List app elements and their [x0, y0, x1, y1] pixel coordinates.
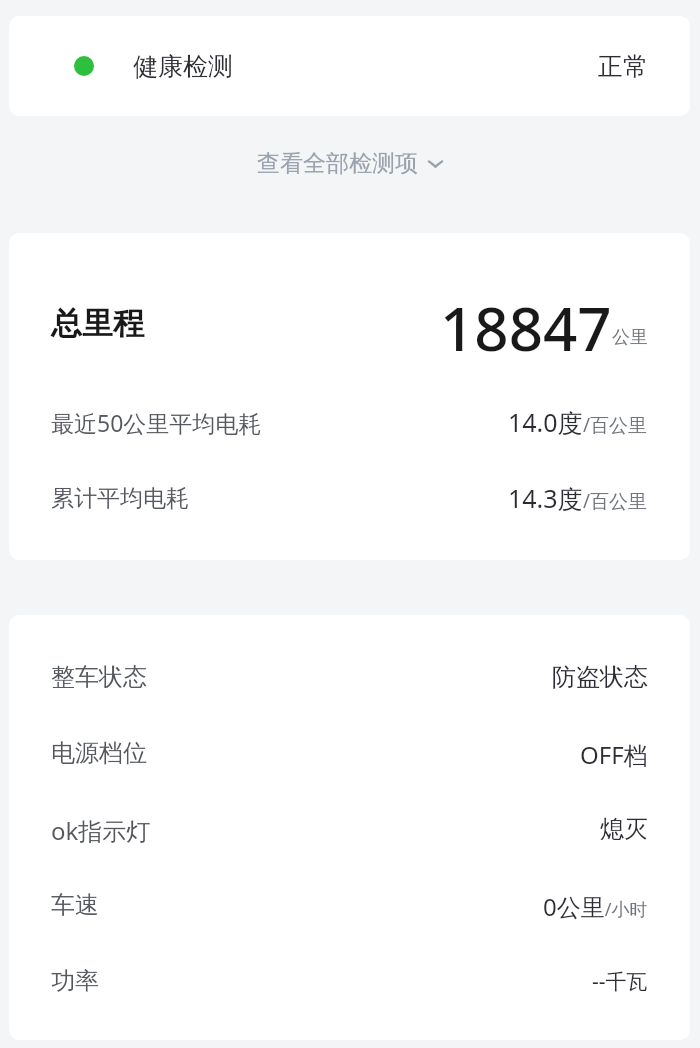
staticText: 正常 — [598, 51, 648, 82]
staticText: /百公里 — [583, 412, 648, 438]
staticText: 整车状态 — [51, 662, 147, 692]
other: Expand all check items — [428, 156, 443, 171]
staticText: ok指示灯 — [51, 814, 151, 844]
staticText: 最近50公里平均电耗 — [51, 407, 262, 438]
staticText: 14.3度 — [508, 481, 583, 515]
staticText: --千瓦 — [592, 967, 648, 996]
staticText: 功率 — [51, 966, 99, 996]
staticText: 防盗状态 — [552, 662, 648, 692]
staticText: 18847 — [440, 287, 612, 359]
staticText: 健康检测 — [133, 51, 233, 82]
staticText: OFF档 — [580, 738, 648, 768]
staticText: /百公里 — [583, 488, 648, 514]
staticText: 查看全部检测项 — [257, 149, 418, 178]
staticText: 公里 — [612, 326, 648, 349]
staticText: 14.0度 — [508, 405, 583, 439]
staticText: 电源档位 — [51, 738, 147, 768]
button[interactable]: 查看全部检测项 — [0, 140, 700, 186]
staticText: 0公里/小时 — [543, 890, 648, 920]
staticText: 累计平均电耗 — [51, 484, 189, 513]
staticText: 车速 — [51, 890, 99, 920]
button[interactable]: 健康检测 — [9, 16, 690, 116]
staticText: 总里程 — [51, 304, 144, 343]
staticText: 熄灭 — [600, 814, 648, 844]
